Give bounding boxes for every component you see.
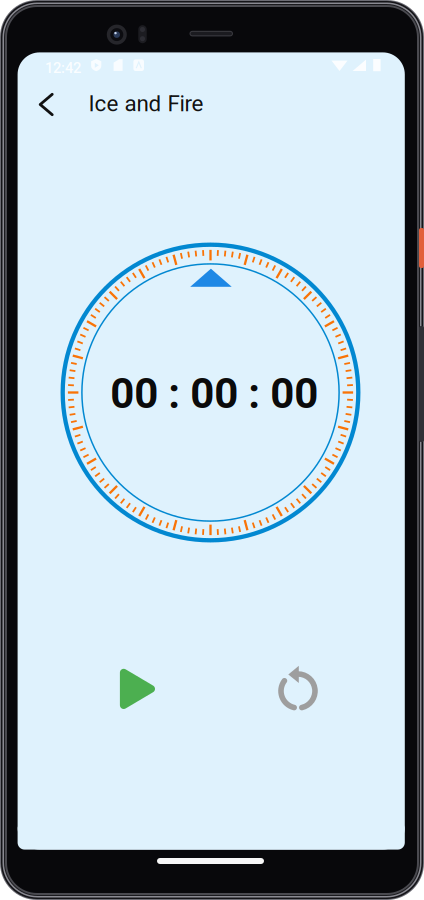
staticText: Ice and Fire [89, 90, 204, 117]
staticText: 12:42 [45, 59, 81, 77]
staticText: 00 : 00 : 00 [110, 369, 318, 418]
button[interactable]: Start timer [0, 0, 60, 60]
button[interactable]: Back [0, 0, 40, 40]
button[interactable]: Reset timer [0, 0, 60, 60]
